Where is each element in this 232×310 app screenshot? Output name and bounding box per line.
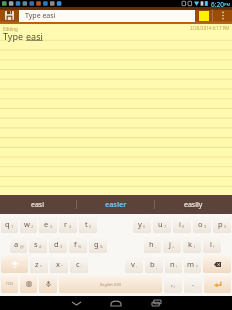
button[interactable]: b	[145, 255, 163, 273]
button[interactable]: c	[70, 255, 88, 273]
staticText: f	[74, 239, 77, 249]
button[interactable]: n	[165, 255, 182, 273]
staticText: 4	[69, 224, 72, 229]
staticText: v	[131, 259, 135, 269]
staticText: -	[155, 244, 157, 249]
staticText: g	[94, 239, 99, 249]
staticText: s	[34, 239, 38, 249]
staticText: !	[176, 264, 178, 269]
staticText: ·	[194, 284, 195, 289]
staticText: d	[54, 239, 59, 249]
staticText: *	[40, 264, 43, 269]
staticText: 7	[164, 224, 167, 229]
staticText: 8	[182, 224, 185, 229]
button[interactable]: f	[69, 235, 87, 253]
button[interactable]: r	[59, 215, 77, 233]
staticText: easier	[105, 200, 127, 210]
button[interactable]: Type easi	[19, 10, 195, 22]
button[interactable]: q	[1, 215, 18, 233]
staticText: )	[213, 244, 215, 249]
staticText: ♪	[173, 285, 176, 289]
button[interactable]: m	[184, 255, 201, 273]
button[interactable]: g	[89, 235, 107, 253]
staticText: z	[35, 259, 39, 269]
staticText: “	[61, 264, 63, 269]
staticText: m	[187, 259, 195, 269]
button[interactable]: p	[213, 215, 231, 233]
button[interactable]: w	[20, 215, 37, 233]
staticText: 5	[89, 224, 92, 229]
button[interactable]: ,	[164, 275, 182, 293]
button[interactable]: easier	[77, 195, 154, 214]
staticText: o	[198, 219, 203, 229]
button[interactable]: .	[184, 275, 202, 293]
staticText: 3	[50, 224, 53, 229]
button[interactable]: Save	[0, 7, 19, 24]
button[interactable]: Voice input	[39, 275, 57, 293]
staticText: r	[64, 219, 68, 229]
staticText: 2/26/2014 6:17 PM	[190, 25, 230, 31]
staticText: t	[85, 219, 88, 229]
button[interactable]: Recents	[136, 296, 176, 310]
button[interactable]: x	[50, 255, 68, 273]
staticText: +	[172, 244, 175, 249]
staticText: 9	[204, 224, 207, 229]
button[interactable]: Shift	[1, 255, 28, 273]
button[interactable]: s	[29, 235, 47, 253]
staticText: :	[136, 264, 138, 269]
staticText: 2	[31, 224, 34, 229]
staticText: easily	[184, 200, 203, 210]
button[interactable]: Back	[56, 296, 96, 310]
button[interactable]: v	[125, 255, 143, 273]
button[interactable]: Home	[96, 296, 136, 310]
staticText: 6:20	[211, 0, 224, 7]
button[interactable]: j	[163, 235, 181, 253]
staticText: ;	[156, 264, 158, 269]
staticText: l	[210, 239, 212, 249]
staticText: h	[149, 239, 154, 249]
staticText: easi	[31, 200, 45, 210]
staticText: '	[81, 264, 82, 269]
button[interactable]: y	[133, 215, 151, 233]
button[interactable]: l	[203, 235, 221, 253]
button[interactable]: h	[144, 235, 161, 253]
staticText: 1	[11, 224, 14, 229]
button[interactable]: Enter	[204, 275, 231, 293]
staticText: ?	[196, 264, 198, 269]
button[interactable]: a	[10, 235, 27, 253]
staticText: e	[44, 219, 49, 229]
staticText: i	[179, 219, 181, 229]
staticText: .	[192, 279, 194, 289]
staticText: k	[188, 239, 193, 249]
staticText: j	[169, 239, 171, 249]
staticText: (	[194, 244, 196, 249]
staticText: Type	[3, 30, 26, 42]
staticText: c	[76, 259, 80, 269]
button[interactable]: Note colour	[195, 7, 212, 24]
staticText: English (US)	[100, 282, 122, 287]
button[interactable]: t	[79, 215, 97, 233]
button[interactable]: z	[30, 255, 48, 273]
button[interactable]: i	[173, 215, 191, 233]
staticText: w	[24, 219, 30, 229]
button[interactable]: More options	[213, 7, 232, 24]
button[interactable]: Symbols	[1, 275, 18, 293]
button[interactable]: easily	[155, 195, 232, 214]
staticText: n	[170, 259, 175, 269]
button[interactable]: d	[49, 235, 67, 253]
staticText: @	[20, 244, 24, 249]
button[interactable]: u	[153, 215, 171, 233]
button[interactable]: Backspace	[203, 255, 231, 273]
staticText: easi	[26, 30, 43, 42]
button[interactable]: k	[183, 235, 201, 253]
staticText: &	[100, 244, 103, 249]
staticText: y	[138, 219, 142, 229]
staticText: Editing	[3, 26, 18, 32]
button[interactable]: e	[39, 215, 57, 233]
button[interactable]: Space	[59, 275, 162, 293]
button[interactable]: o	[193, 215, 211, 233]
button[interactable]: easi	[0, 195, 76, 214]
staticText: #	[39, 244, 42, 249]
staticText: PM	[224, 2, 231, 7]
button[interactable]: Change language	[20, 275, 37, 293]
